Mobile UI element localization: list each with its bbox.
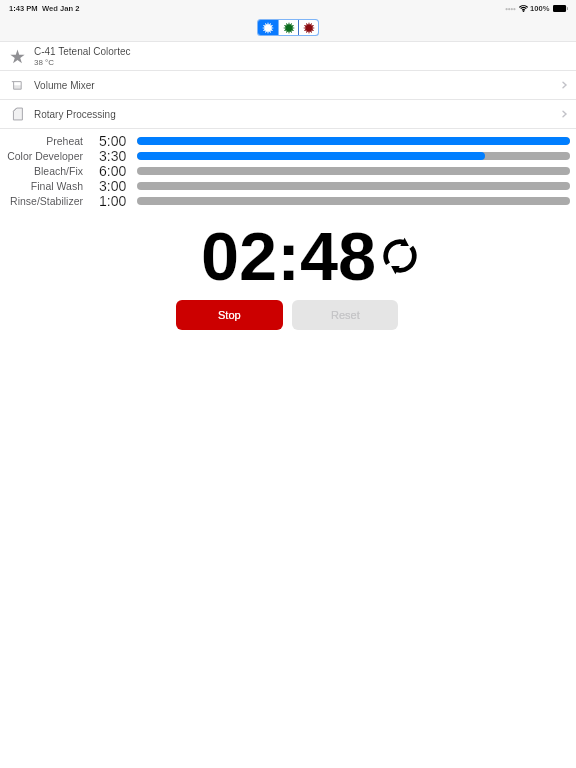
staticText: Rinse/Stabilizer xyxy=(10,195,83,207)
staticText: 100% xyxy=(530,4,550,12)
staticText: 1:00 xyxy=(99,193,127,208)
button[interactable]: Red safelight xyxy=(299,20,318,35)
button[interactable]: Rotary Processing xyxy=(0,100,576,128)
staticText: 6:00 xyxy=(99,163,127,178)
staticText: Reset xyxy=(331,309,360,321)
staticText: Bleach/Fix xyxy=(33,165,83,177)
button[interactable]: Daylight xyxy=(258,20,278,35)
staticText: Color Developer xyxy=(7,150,83,162)
staticText: C-41 Tetenal Colortec xyxy=(34,46,131,57)
button[interactable]: Repeat xyxy=(382,238,418,274)
button[interactable]: Volume Mixer xyxy=(0,71,576,99)
staticText: 1:43 PM xyxy=(9,4,38,12)
staticText: 02:48 xyxy=(201,218,377,288)
staticText: Rotary Processing xyxy=(34,109,116,120)
button[interactable]: Reset xyxy=(292,300,398,330)
button[interactable]: C-41 Tetenal Colortec xyxy=(0,42,576,70)
staticText: 5:00 xyxy=(99,133,127,148)
staticText: Stop xyxy=(218,309,241,321)
staticText: Volume Mixer xyxy=(34,80,95,91)
staticText: 3:30 xyxy=(99,148,127,163)
staticText: Final Wash xyxy=(30,180,83,192)
staticText: 3:00 xyxy=(99,178,127,193)
staticText: 38 °C xyxy=(34,58,55,67)
staticText: Preheat xyxy=(46,135,83,147)
staticText: Wed Jan 2 xyxy=(42,4,80,12)
button[interactable]: Stop xyxy=(176,300,283,330)
button[interactable]: Green safelight xyxy=(279,20,298,35)
